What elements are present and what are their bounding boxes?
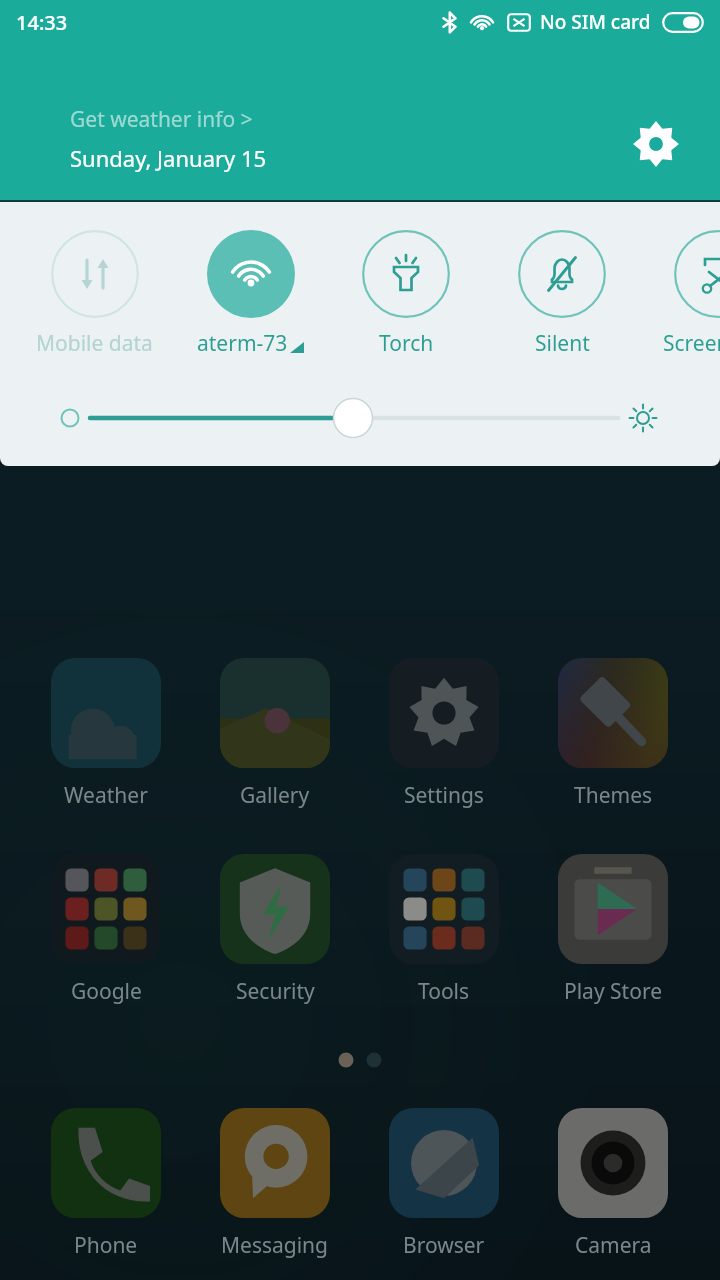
staticText: Security xyxy=(236,977,315,1004)
staticText: Screenshot xyxy=(663,329,720,358)
button[interactable]: Settings xyxy=(626,114,686,174)
staticText: Play Store xyxy=(564,977,662,1004)
button[interactable]: Settings xyxy=(372,658,516,808)
button[interactable]: Camera xyxy=(541,1108,685,1258)
button[interactable]: Gallery xyxy=(203,658,347,808)
button[interactable]: Google xyxy=(34,854,178,1004)
staticText: 14:33 xyxy=(16,9,68,36)
staticText: Gallery xyxy=(240,781,310,808)
staticText: Camera xyxy=(575,1231,652,1258)
button[interactable]: Screenshot xyxy=(646,230,720,360)
button[interactable]: Play Store xyxy=(541,854,685,1004)
staticText: Google xyxy=(71,977,142,1004)
button[interactable]: Weather xyxy=(34,658,178,808)
button[interactable]: Mobile data xyxy=(22,230,166,360)
staticText: Sunday, January 15 xyxy=(70,143,267,173)
button[interactable]: Security xyxy=(203,854,347,1004)
staticText: No SIM card xyxy=(540,9,651,35)
staticText: Mobile data xyxy=(36,329,153,358)
button[interactable]: aterm-73 xyxy=(178,230,322,360)
button[interactable]: Themes xyxy=(541,658,685,808)
button[interactable]: Phone xyxy=(34,1108,178,1258)
staticText: Themes xyxy=(574,781,653,808)
button[interactable]: Browser xyxy=(372,1108,516,1258)
staticText: Get weather info > xyxy=(70,105,253,134)
staticText: Weather xyxy=(64,781,148,808)
staticText: Tools xyxy=(418,977,470,1004)
staticText: Browser xyxy=(403,1231,485,1258)
button[interactable]: Messaging xyxy=(203,1108,347,1258)
button[interactable] xyxy=(0,386,720,450)
staticText: aterm-73 xyxy=(197,329,288,358)
button[interactable]: Tools xyxy=(372,854,516,1004)
staticText: Settings xyxy=(404,781,484,808)
staticText: Torch xyxy=(379,329,434,358)
button[interactable]: Torch xyxy=(334,230,478,360)
button[interactable]: Silent xyxy=(490,230,634,360)
staticText: Silent xyxy=(535,329,590,358)
staticText: Messaging xyxy=(221,1231,329,1258)
staticText: Phone xyxy=(74,1231,138,1258)
